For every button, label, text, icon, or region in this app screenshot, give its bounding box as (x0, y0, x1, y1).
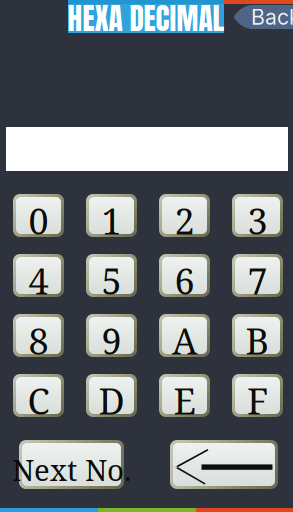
button[interactable]: 3 (232, 194, 283, 237)
button[interactable]: 2 (159, 194, 210, 237)
button[interactable]: 7 (232, 254, 283, 297)
staticText: F (247, 376, 268, 425)
button[interactable]: 5 (86, 254, 137, 297)
button[interactable]: Back (234, 5, 293, 29)
staticText: Back (251, 4, 293, 30)
staticText: 6 (174, 256, 194, 305)
button[interactable]: 6 (159, 254, 210, 297)
staticText: Next No. (12, 449, 131, 489)
staticText: C (27, 376, 49, 425)
button[interactable]: B (232, 314, 283, 357)
staticText: 7 (247, 256, 267, 305)
staticText: 5 (101, 256, 121, 305)
staticText: 8 (28, 316, 48, 365)
button[interactable]: 0 (13, 194, 64, 237)
button[interactable]: Backspace (170, 440, 278, 489)
staticText: D (98, 376, 124, 425)
staticText: 9 (101, 316, 121, 365)
staticText: A (172, 316, 197, 365)
staticText: HEXA DECIMAL (67, 0, 224, 41)
staticText: 4 (28, 256, 48, 305)
button[interactable]: 8 (13, 314, 64, 357)
button[interactable]: 4 (13, 254, 64, 297)
staticText: 2 (174, 196, 194, 245)
button[interactable]: 1 (86, 194, 137, 237)
button[interactable]: E (159, 374, 210, 417)
staticText: B (245, 316, 269, 365)
button[interactable]: D (86, 374, 137, 417)
staticText: 0 (28, 196, 48, 245)
button[interactable]: Next No. (19, 440, 124, 489)
staticText: E (173, 376, 195, 425)
button[interactable]: A (159, 314, 210, 357)
staticText: 3 (247, 196, 267, 245)
button[interactable]: C (13, 374, 64, 417)
button[interactable]: F (232, 374, 283, 417)
staticText: 1 (101, 196, 121, 245)
button[interactable]: 9 (86, 314, 137, 357)
